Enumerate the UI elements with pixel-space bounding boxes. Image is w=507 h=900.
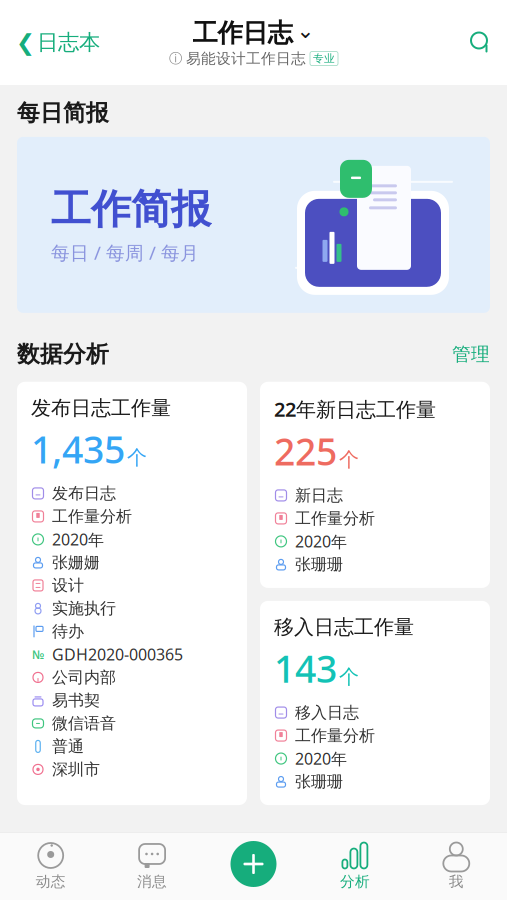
- button[interactable]: 分析: [304, 834, 406, 897]
- button[interactable]: 发布日志工作量: [17, 382, 247, 805]
- staticText: 深圳市: [52, 760, 100, 779]
- staticText: 225: [274, 426, 337, 476]
- staticText: 工作量分析: [295, 509, 375, 528]
- staticText: ❮: [16, 30, 35, 55]
- staticText: 移入日志工作量: [274, 615, 414, 639]
- staticText: 2020年: [295, 748, 347, 769]
- staticText: 普通: [52, 737, 84, 756]
- staticText: 专业: [313, 52, 335, 65]
- staticText: 消息: [137, 872, 167, 890]
- staticText: 发布日志: [52, 484, 116, 503]
- button[interactable]: 22年新日志工作量: [260, 382, 490, 588]
- button[interactable]: 动态: [0, 834, 101, 897]
- button[interactable]: 搜索: [455, 14, 507, 70]
- staticText: 143: [274, 643, 337, 693]
- staticText: 每日简报: [17, 99, 109, 127]
- staticText: 2020年: [52, 529, 104, 550]
- staticText: 待办: [52, 622, 84, 641]
- staticText: GDH2020-000365: [52, 644, 183, 665]
- staticText: 管理: [452, 343, 490, 366]
- staticText: 张珊珊: [295, 555, 343, 574]
- staticText: 22年新日志工作量: [274, 396, 436, 422]
- staticText: ⌄: [296, 18, 314, 43]
- staticText: 动态: [36, 872, 66, 890]
- staticText: 易书契: [52, 691, 100, 710]
- staticText: 工作量分析: [295, 726, 375, 745]
- staticText: 分析: [340, 872, 370, 890]
- staticText: 2020年: [295, 531, 347, 552]
- staticText: 我: [449, 872, 464, 890]
- staticText: 设计: [52, 576, 84, 595]
- button[interactable]: 消息: [101, 834, 203, 897]
- staticText: 移入日志: [295, 703, 359, 722]
- staticText: 新日志: [295, 486, 343, 505]
- button[interactable]: ❮: [0, 14, 116, 70]
- staticText: 个: [339, 447, 359, 472]
- staticText: 张珊珊: [295, 772, 343, 791]
- staticText: 易能设计工作日志: [186, 50, 306, 68]
- staticText: 工作简报: [51, 185, 211, 234]
- button[interactable]: 移入日志工作量: [260, 601, 490, 805]
- button[interactable]: 新建: [218, 830, 288, 898]
- button[interactable]: 管理: [442, 339, 490, 370]
- staticText: 个: [127, 445, 147, 470]
- staticText: 每日 / 每周 / 每月: [51, 240, 199, 265]
- staticText: 1,435: [31, 424, 125, 474]
- staticText: 发布日志工作量: [31, 396, 171, 420]
- staticText: 微信语音: [52, 714, 116, 733]
- staticText: 数据分析: [17, 340, 109, 368]
- staticText: №: [32, 646, 44, 662]
- staticText: 工作量分析: [52, 507, 132, 526]
- staticText: 个: [339, 664, 359, 689]
- button[interactable]: 工作简报: [0, 127, 507, 313]
- staticText: 工作日志: [192, 17, 292, 48]
- button[interactable]: 我: [406, 834, 507, 897]
- staticText: ⓘ: [169, 50, 182, 67]
- staticText: 公司内部: [52, 668, 116, 687]
- staticText: 实施执行: [52, 599, 116, 618]
- staticText: 张姗姗: [52, 553, 100, 572]
- staticText: 日志本: [37, 29, 100, 56]
